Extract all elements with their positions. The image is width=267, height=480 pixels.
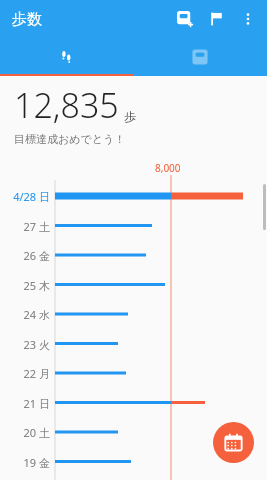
button[interactable]: Steps bbox=[0, 38, 133, 76]
button[interactable]: Weight bbox=[133, 38, 267, 76]
button[interactable]: 20 土 bbox=[0, 425, 50, 440]
button[interactable]: More options bbox=[233, 4, 263, 34]
staticText: 歩 bbox=[124, 109, 136, 124]
button[interactable]: Add weight bbox=[169, 3, 201, 35]
staticText: 目標達成おめでとう！ bbox=[14, 132, 126, 146]
button[interactable]: 24 水 bbox=[0, 307, 50, 322]
button[interactable]: 23 火 bbox=[0, 337, 50, 352]
button[interactable]: 27 土 bbox=[0, 219, 50, 234]
button[interactable]: 25 木 bbox=[0, 278, 50, 293]
staticText: 12,835 bbox=[14, 82, 119, 128]
button[interactable]: 26 金 bbox=[0, 248, 50, 263]
staticText: 8,000 bbox=[155, 161, 181, 175]
button[interactable]: 19 金 bbox=[0, 455, 50, 470]
button[interactable]: Goal bbox=[201, 3, 233, 35]
button[interactable]: 22 月 bbox=[0, 366, 50, 381]
button[interactable]: 21 日 bbox=[0, 396, 50, 411]
button[interactable]: Calendar bbox=[213, 422, 254, 463]
staticText: 歩数 bbox=[12, 10, 42, 29]
button[interactable]: 4/28 日 bbox=[0, 189, 50, 204]
